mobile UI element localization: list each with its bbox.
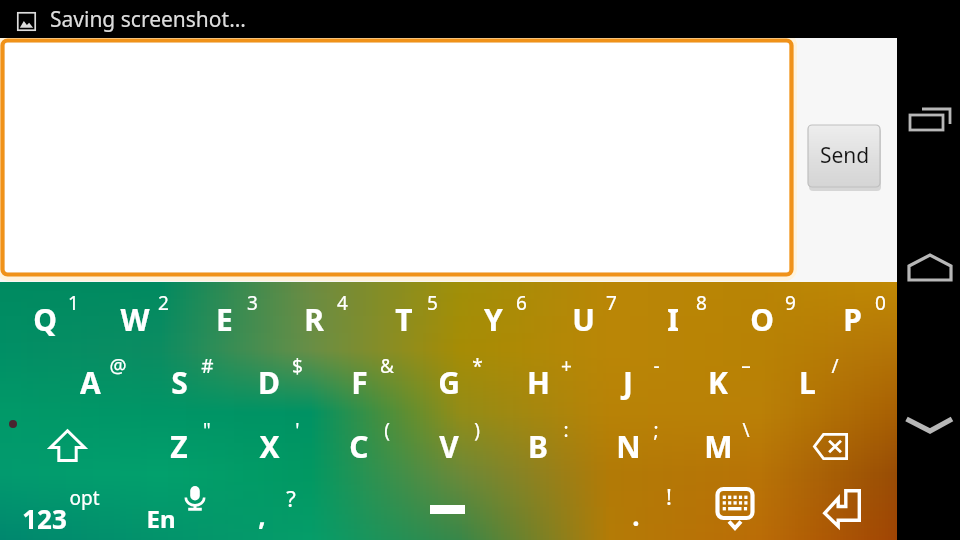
button[interactable]: T	[359, 294, 449, 344]
button[interactable]: M	[673, 421, 763, 471]
staticText: !	[666, 481, 672, 511]
staticText: ?	[286, 483, 296, 513]
staticText: \	[742, 417, 750, 443]
staticText: E	[216, 299, 233, 340]
staticText: A	[80, 362, 101, 403]
staticText: 0	[875, 290, 886, 316]
staticText: '	[295, 417, 300, 443]
button[interactable]: K	[673, 357, 763, 407]
button[interactable]: N	[583, 421, 673, 471]
staticText: –	[741, 353, 751, 379]
staticText: 7	[606, 290, 617, 316]
button[interactable]: H	[493, 357, 583, 407]
button[interactable]: Shift	[22, 420, 112, 470]
button[interactable]: ,	[217, 490, 307, 540]
staticText: ;	[653, 417, 659, 443]
staticText: S	[171, 362, 188, 403]
staticText: @	[109, 353, 127, 379]
staticText: U	[572, 299, 595, 340]
staticText: 1	[68, 290, 79, 316]
staticText: 8	[696, 290, 707, 316]
staticText: N	[616, 426, 641, 467]
button[interactable]: Z	[134, 421, 224, 471]
button[interactable]: F	[314, 357, 404, 407]
staticText: *	[472, 353, 483, 379]
staticText: D	[258, 362, 280, 403]
button[interactable]: D	[224, 357, 314, 407]
staticText: V	[439, 426, 459, 467]
staticText: 3	[247, 290, 258, 316]
staticText: 6	[516, 290, 527, 316]
staticText: F	[351, 362, 368, 403]
staticText: Z	[170, 426, 188, 467]
button[interactable]: U	[538, 294, 628, 344]
button[interactable]: Recent apps	[897, 90, 960, 154]
staticText: -	[653, 353, 660, 379]
staticText: .	[632, 498, 640, 533]
staticText: M	[704, 426, 733, 467]
button[interactable]: .	[591, 490, 681, 540]
staticText: 123	[22, 501, 67, 536]
staticText: ,	[258, 498, 266, 533]
button[interactable]: E	[179, 294, 269, 344]
button[interactable]: Back	[897, 400, 960, 450]
staticText: O	[750, 299, 774, 340]
staticText: G	[438, 362, 460, 403]
button[interactable]: Home	[897, 240, 960, 304]
button[interactable]: G	[404, 357, 494, 407]
staticText: K	[708, 362, 728, 403]
button[interactable]: Voice input	[150, 473, 240, 523]
staticText: 9	[785, 290, 796, 316]
staticText: I	[667, 299, 679, 340]
button[interactable]: En	[116, 493, 206, 540]
staticText: C	[349, 426, 369, 467]
staticText: Q	[33, 299, 57, 340]
staticText: Send	[820, 141, 870, 170]
staticText: R	[304, 299, 324, 340]
staticText: :	[563, 417, 569, 443]
button[interactable]: Q	[0, 294, 90, 344]
staticText: Saving screenshot…	[50, 5, 246, 34]
staticText: H	[527, 362, 550, 403]
button[interactable]: I	[628, 294, 718, 344]
button[interactable]: Backspace	[785, 421, 875, 471]
button[interactable]: Hide keyboard	[690, 483, 780, 533]
staticText: "	[203, 417, 211, 443]
staticText: #	[201, 353, 214, 379]
button[interactable]: V	[404, 421, 494, 471]
staticText: &	[380, 353, 394, 379]
button[interactable]: Enter	[797, 483, 887, 533]
staticText: En	[146, 502, 176, 535]
staticText: $	[292, 353, 303, 379]
staticText: 2	[158, 290, 169, 316]
button[interactable]: P	[807, 294, 897, 344]
button[interactable]: Y	[448, 294, 538, 344]
button[interactable]: B	[493, 421, 583, 471]
button[interactable]: Send	[806, 124, 882, 191]
staticText: +	[561, 353, 572, 379]
button[interactable]: S	[134, 357, 224, 407]
button[interactable]: C	[314, 421, 404, 471]
button[interactable]: X	[224, 421, 314, 471]
button[interactable]: A	[45, 357, 135, 407]
staticText: B	[528, 426, 548, 467]
staticText: 5	[427, 290, 438, 316]
staticText: opt	[69, 485, 100, 511]
staticText: L	[799, 362, 816, 403]
staticText: J	[623, 362, 633, 403]
button[interactable]: R	[269, 294, 359, 344]
button[interactable]: L	[762, 357, 852, 407]
staticText: Y	[484, 299, 503, 340]
staticText: 4	[337, 290, 348, 316]
button[interactable]: W	[90, 294, 180, 344]
staticText: /	[831, 353, 839, 379]
button[interactable]: 123	[0, 493, 89, 540]
staticText: (	[384, 417, 390, 443]
staticText: T	[395, 299, 413, 340]
button[interactable]: O	[717, 294, 807, 344]
button[interactable]: J	[583, 357, 673, 407]
staticText: P	[843, 299, 862, 340]
staticText: W	[120, 299, 150, 340]
staticText: X	[259, 426, 280, 467]
